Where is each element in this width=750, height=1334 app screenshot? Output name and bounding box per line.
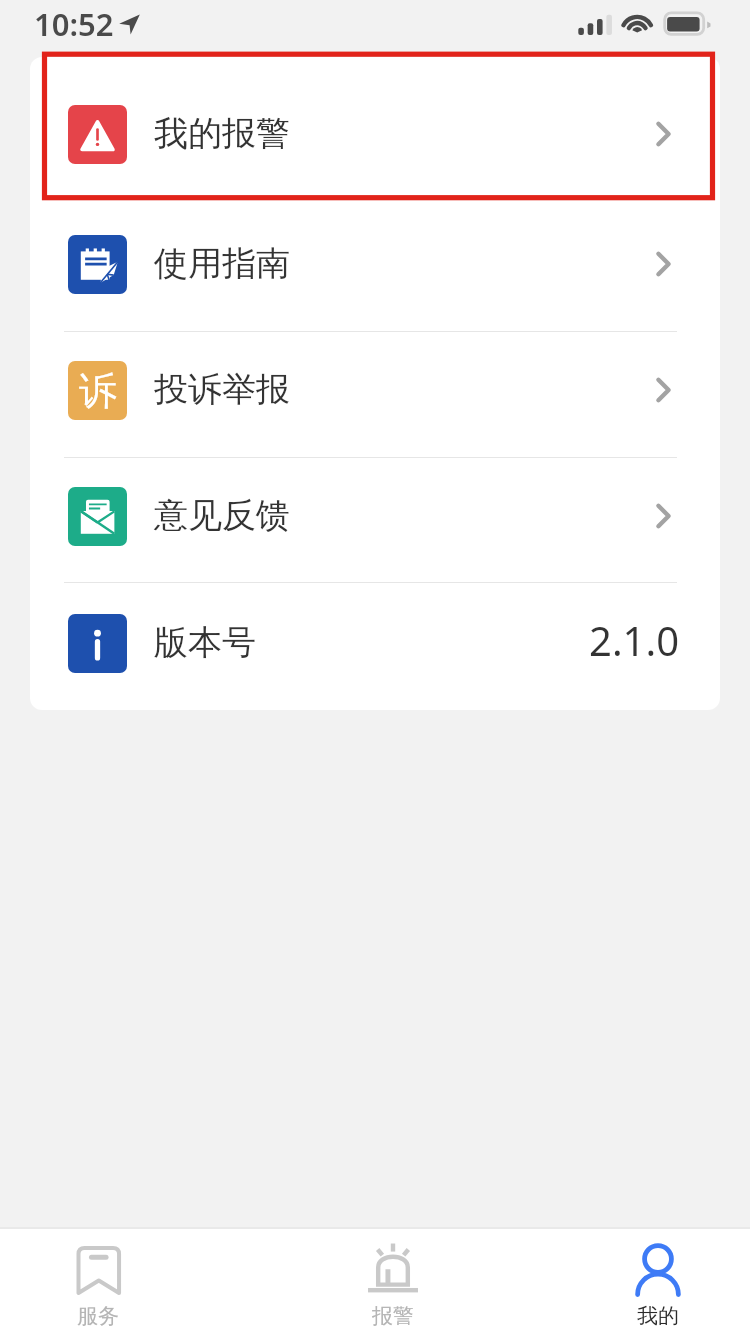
staticText: 版本号 (154, 621, 256, 664)
button[interactable]: 我的 (588, 1229, 728, 1334)
staticText: 报警 (372, 1303, 414, 1329)
button[interactable]: 使用指南 (30, 199, 720, 331)
staticText: 使用指南 (154, 242, 290, 285)
button[interactable]: 我的报警 (30, 57, 720, 199)
staticText: 我的 (637, 1303, 679, 1329)
staticText: 2.1.0 (589, 613, 680, 667)
staticText: 10:52 (34, 3, 114, 45)
button[interactable]: 服务 (28, 1229, 168, 1334)
button[interactable]: 报警 (323, 1229, 463, 1334)
staticText: 服务 (77, 1303, 119, 1329)
staticText: 诉 (79, 367, 117, 415)
button[interactable]: 诉 (30, 331, 720, 457)
staticText: 投诉举报 (154, 368, 290, 411)
button[interactable]: 版本号 (30, 582, 720, 710)
staticText: 意见反馈 (154, 494, 290, 537)
staticText: 我的报警 (154, 112, 290, 155)
button[interactable]: 意见反馈 (30, 457, 720, 582)
